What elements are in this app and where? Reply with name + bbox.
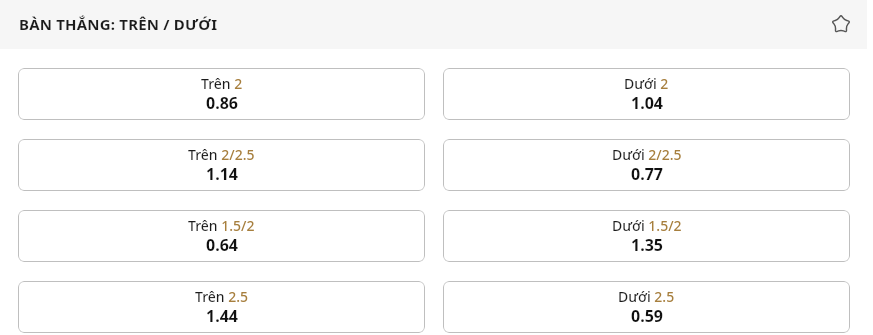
staticText: BÀN THẮNG: TRÊN / DƯỚI	[19, 14, 218, 34]
staticText: Dưới 2.5	[618, 287, 675, 306]
button[interactable]: Dưới 2/2.5	[443, 139, 850, 191]
button[interactable]: Add to favourites	[826, 10, 856, 40]
button[interactable]: Trên 2.5	[18, 281, 425, 333]
staticText: Trên 2	[201, 74, 243, 93]
staticText: Dưới 1.5/2	[612, 216, 682, 235]
staticText: Trên 2/2.5	[188, 145, 255, 164]
button[interactable]: Trên 1.5/2	[18, 210, 425, 262]
staticText: 1.14	[206, 163, 238, 185]
staticText: 0.64	[206, 234, 238, 256]
staticText: 1.35	[631, 234, 663, 256]
button[interactable]: Dưới 1.5/2	[443, 210, 850, 262]
staticText: Trên 1.5/2	[188, 216, 255, 235]
button[interactable]: Trên 2/2.5	[18, 139, 425, 191]
staticText: 0.77	[631, 163, 663, 185]
staticText: Trên 2.5	[195, 287, 249, 306]
staticText: Dưới 2	[624, 74, 669, 93]
staticText: 1.04	[631, 92, 663, 114]
staticText: 0.59	[631, 305, 663, 327]
staticText: Dưới 2/2.5	[612, 145, 682, 164]
button[interactable]: Trên 2	[18, 68, 425, 120]
staticText: 0.86	[206, 92, 238, 114]
button[interactable]: Dưới 2.5	[443, 281, 850, 333]
button[interactable]: Dưới 2	[443, 68, 850, 120]
staticText: 1.44	[206, 305, 238, 327]
